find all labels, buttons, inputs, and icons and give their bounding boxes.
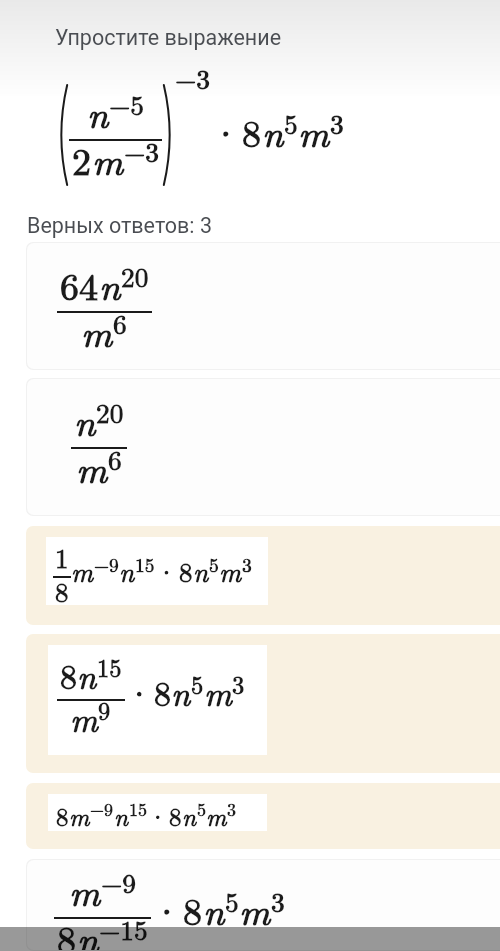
staticText: · <box>148 798 168 833</box>
staticText: m <box>204 668 232 716</box>
staticText: 1 <box>55 538 69 576</box>
staticText: 3 <box>232 666 245 701</box>
staticText: · <box>156 552 178 590</box>
staticText: 8 <box>154 668 171 716</box>
staticText: −15 <box>99 909 148 948</box>
staticText: −9 <box>101 862 136 901</box>
staticText: 5 <box>209 550 219 578</box>
staticText: n <box>74 393 96 447</box>
staticText: −3 <box>175 58 210 97</box>
staticText: · <box>211 104 241 158</box>
button[interactable]: 8 <box>26 783 500 849</box>
staticText: 5 <box>197 796 206 822</box>
staticText: 15 <box>129 796 147 822</box>
staticText: n <box>182 798 197 833</box>
staticText: 8 <box>57 910 77 950</box>
staticText: n <box>262 104 284 158</box>
staticText: 3 <box>330 103 344 142</box>
staticText: 8 <box>179 552 193 590</box>
staticText: 64 <box>60 257 99 311</box>
staticText: m <box>71 552 94 590</box>
staticText: 2 <box>72 132 92 186</box>
staticText: 5 <box>225 881 239 920</box>
button[interactable]: 64 <box>27 243 500 369</box>
staticText: 6 <box>108 439 122 478</box>
staticText: 8 <box>60 651 77 699</box>
staticText: · <box>126 668 153 716</box>
staticText: 6 <box>113 303 127 342</box>
staticText: n <box>193 552 209 590</box>
staticText: 15 <box>97 649 122 684</box>
staticText: −9 <box>90 796 114 822</box>
staticText: m <box>69 798 90 833</box>
staticText: n <box>203 882 225 936</box>
staticText: m <box>69 863 101 917</box>
staticText: 8 <box>169 798 182 833</box>
staticText: Упростите выражение <box>55 25 282 50</box>
staticText: n <box>114 798 129 833</box>
staticText: m <box>76 440 108 494</box>
button[interactable]: n <box>27 379 500 515</box>
staticText: n <box>77 910 99 950</box>
staticText: 8 <box>242 104 262 158</box>
staticText: 20 <box>121 256 149 295</box>
staticText: m <box>70 694 98 742</box>
staticText: 5 <box>191 666 204 701</box>
staticText: 9 <box>98 692 111 727</box>
staticText: 5 <box>284 103 298 142</box>
staticText: 8 <box>56 798 69 833</box>
staticText: Верных ответов: 3 <box>27 213 212 238</box>
staticText: m <box>239 882 271 936</box>
staticText: 3 <box>227 796 236 822</box>
staticText: m <box>92 132 124 186</box>
staticText: −3 <box>124 131 159 170</box>
staticText: 20 <box>96 392 124 431</box>
staticText: 15 <box>135 550 155 578</box>
staticText: 8 <box>183 882 203 936</box>
staticText: m <box>298 104 330 158</box>
button[interactable]: 1 <box>26 526 500 625</box>
staticText: · <box>152 882 182 936</box>
button[interactable]: 8 <box>26 634 500 773</box>
staticText: −5 <box>109 84 144 123</box>
staticText: 3 <box>271 881 285 920</box>
button[interactable]: m <box>27 860 500 950</box>
staticText: n <box>77 651 97 699</box>
staticText: n <box>119 552 135 590</box>
staticText: n <box>87 85 109 139</box>
staticText: n <box>99 257 121 311</box>
staticText: m <box>81 304 113 358</box>
staticText: m <box>219 552 242 590</box>
staticText: 8 <box>55 572 69 610</box>
staticText: 3 <box>242 550 252 578</box>
staticText: −9 <box>94 550 119 578</box>
staticText: m <box>206 798 227 833</box>
staticText: n <box>171 668 191 716</box>
